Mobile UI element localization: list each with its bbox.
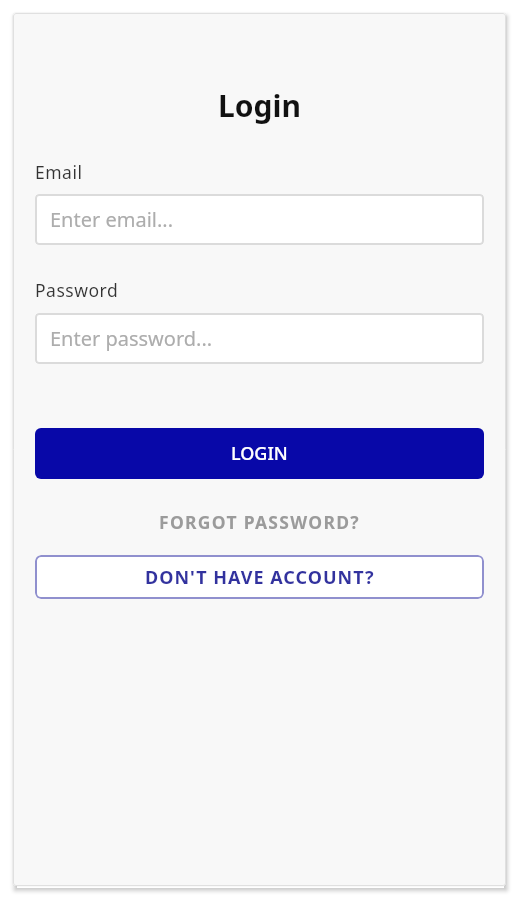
staticText: LOGIN (231, 441, 288, 466)
button[interactable]: FORGOT PASSWORD? (159, 510, 360, 534)
staticText: DON'T HAVE ACCOUNT? (145, 565, 375, 590)
staticText: Login (218, 85, 301, 126)
staticText: Enter email... (50, 206, 174, 233)
staticText: Enter password... (50, 325, 213, 352)
staticText: Password (35, 278, 119, 302)
button[interactable]: Enter email... (35, 194, 484, 245)
staticText: Email (35, 160, 83, 184)
button[interactable]: LOGIN (35, 428, 484, 479)
button[interactable]: DON'T HAVE ACCOUNT? (35, 555, 484, 599)
button[interactable]: Enter password... (35, 313, 484, 364)
